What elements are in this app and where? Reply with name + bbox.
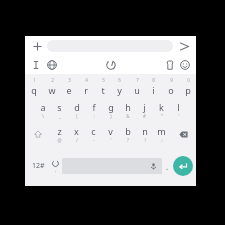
staticText: s [57,101,62,113]
button[interactable]: x [68,122,85,146]
staticText: v [108,125,113,137]
staticText: z [57,125,62,137]
staticText: w [48,84,56,96]
staticText: # [143,113,146,119]
button[interactable]: v [102,122,119,146]
button[interactable]: 6 [111,74,128,98]
button[interactable]: 12# [28,146,48,186]
staticText: ) [110,113,112,119]
staticText: q [31,84,37,96]
button[interactable]: j [136,98,153,122]
staticText: 6 [118,77,121,83]
staticText: f [92,101,96,113]
staticText: 9 [170,77,173,83]
staticText: x [74,125,79,137]
button[interactable]: Handwriting [104,58,118,72]
staticText: 5 [102,77,105,83]
staticText: 7 [136,77,139,83]
staticText: 1 [33,77,36,83]
staticText: c [91,125,96,137]
button[interactable]: 2 [43,74,60,98]
button[interactable]: 8 [145,74,162,98]
button[interactable]: 3 [60,74,77,98]
button[interactable]: 4 [77,74,94,98]
staticText: \ [42,113,44,119]
staticText: - [93,137,95,143]
button[interactable]: b [119,122,136,146]
staticText: ' [110,137,112,143]
button[interactable]: Space [62,158,162,174]
staticText: @ [57,137,62,143]
button[interactable]: Handwriting input [48,146,62,186]
staticText: " [161,113,163,119]
staticText: i [152,84,155,96]
staticText: 3 [68,77,71,83]
staticText: & [126,113,130,119]
button[interactable]: m [153,122,170,146]
button[interactable]: h [119,98,136,122]
staticText: 8 [152,77,155,83]
button[interactable]: k [153,98,170,122]
button[interactable]: f [85,98,102,122]
staticText: j [143,101,146,113]
staticText: . [166,161,169,172]
staticText: r [84,84,88,96]
staticText: ; [161,137,163,143]
button[interactable]: Shift [25,122,51,146]
staticText: l [177,101,180,113]
staticText: ! [144,137,146,143]
button[interactable]: g [102,98,119,122]
button[interactable]: Backspace [170,122,196,146]
staticText: n [142,125,148,137]
button[interactable]: c [85,122,102,146]
button[interactable]: n [136,122,153,146]
staticText: t [101,84,105,96]
button[interactable]: Add attachment [30,39,44,53]
staticText: o [168,84,174,96]
staticText: u [134,84,140,96]
button[interactable]: l [170,98,187,122]
button[interactable]: z [51,122,68,146]
staticText: g [108,101,114,113]
staticText: ' [178,113,180,119]
staticText: 12# [32,161,45,171]
button[interactable]: Change language [45,58,59,72]
staticText: h [125,101,131,113]
staticText: m [157,125,166,137]
button[interactable]: 7 [128,74,145,98]
staticText: ( [76,113,78,119]
staticText: e [66,84,72,96]
button[interactable]: a [34,98,51,122]
button[interactable]: 0 [179,74,196,98]
button[interactable]: Text cursor [29,58,43,72]
button[interactable]: Stickers [163,58,177,72]
staticText: 0 [187,77,190,83]
staticText: a [40,101,46,113]
staticText: b [125,125,131,137]
button[interactable]: Send [177,39,191,53]
staticText: _ [59,113,61,119]
button[interactable]: Enter [173,156,193,176]
staticText: d [74,101,80,113]
staticText: ? [127,137,129,143]
button[interactable]: Emoji [178,58,192,72]
staticText: , [55,167,57,173]
button[interactable]: 9 [162,74,179,98]
button[interactable]: d [68,98,85,122]
button[interactable]: . [162,146,173,186]
staticText: p [185,84,191,96]
staticText: k [159,101,164,113]
button[interactable]: 5 [94,74,111,98]
staticText: 2 [51,77,54,83]
staticText: y [117,84,122,96]
button[interactable]: s [51,98,68,122]
staticText: 4 [85,77,88,83]
button[interactable]: 1 [25,74,43,98]
staticText: : [93,113,95,119]
staticText: / [76,137,78,143]
